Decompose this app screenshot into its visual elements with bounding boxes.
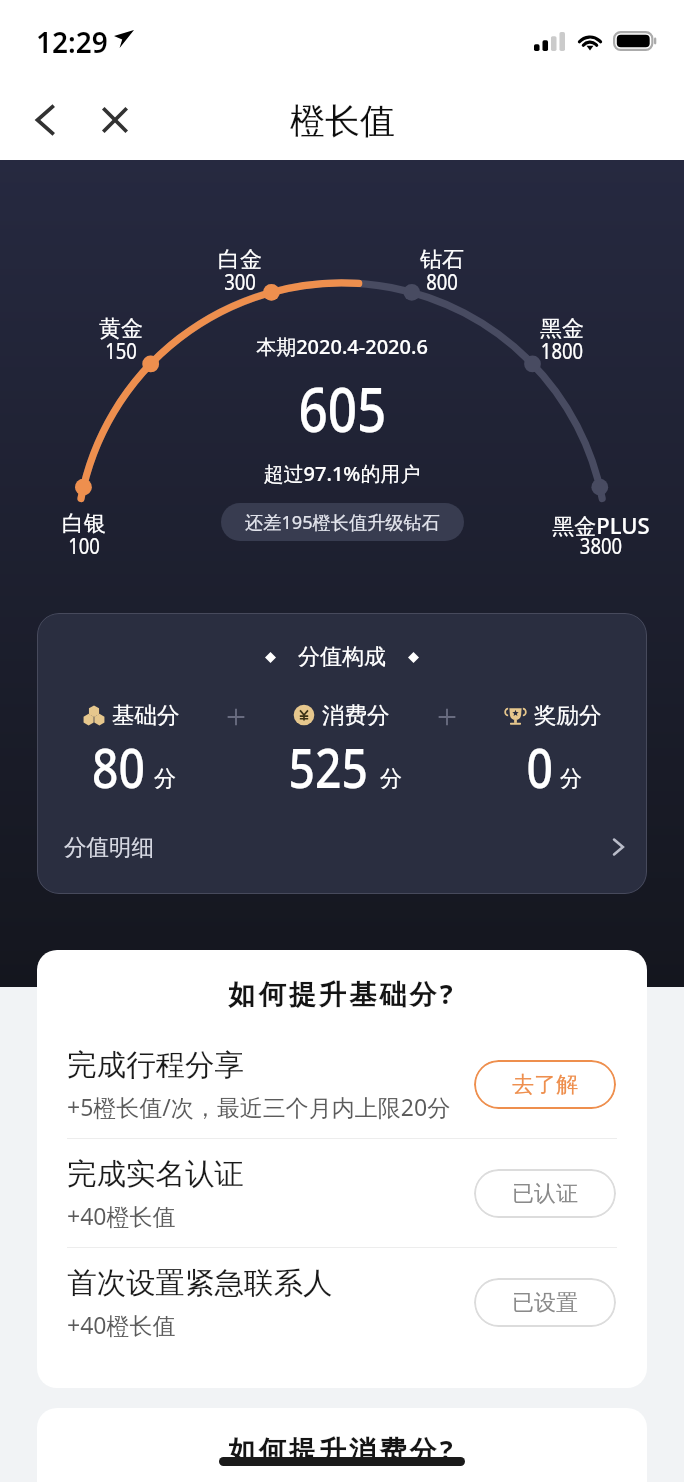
staticText: +40橙长值: [67, 1309, 176, 1340]
staticText: 如何提升基础分?: [37, 975, 647, 1012]
staticText: 300: [139, 266, 341, 296]
staticText: 分: [154, 765, 176, 793]
staticText: 基础分: [112, 701, 180, 729]
staticText: 白银: [0, 510, 204, 538]
button[interactable]: 还差195橙长值升级钻石: [221, 503, 464, 541]
staticText: 800: [341, 266, 543, 296]
staticText: 黑金: [442, 315, 682, 343]
staticText: 已认证: [512, 1180, 578, 1208]
staticText: 橙长值: [290, 99, 395, 143]
button[interactable]: Close: [92, 97, 138, 143]
staticText: 首次设置紧急联系人: [67, 1265, 333, 1302]
button[interactable]: 分值构成: [37, 613, 647, 894]
staticText: 100: [0, 530, 185, 560]
staticText: 完成实名认证: [67, 1156, 244, 1193]
staticText: 已设置: [512, 1289, 578, 1317]
staticText: 消费分: [322, 701, 390, 729]
staticText: 如何提升消费分?: [37, 1431, 647, 1468]
button[interactable]: 已认证: [474, 1169, 616, 1218]
staticText: 80: [92, 729, 145, 804]
button[interactable]: 首次设置紧急联系人: [37, 1248, 647, 1356]
staticText: 还差195橙长值升级钻石: [245, 510, 440, 535]
staticText: 白金: [120, 246, 360, 274]
staticText: 完成行程分享: [67, 1047, 244, 1084]
staticText: 分: [560, 765, 582, 793]
staticText: +40橙长值: [67, 1200, 176, 1231]
staticText: 超过97.1%的用户: [0, 460, 684, 487]
button[interactable]: 完成行程分享: [37, 1030, 647, 1138]
staticText: 黄金: [1, 315, 241, 343]
staticText: 分: [380, 765, 402, 793]
button[interactable]: 完成实名认证: [37, 1139, 647, 1247]
staticText: +5橙长值/次，最近三个月内上限20分: [67, 1091, 451, 1122]
staticText: 525: [289, 729, 368, 804]
staticText: 分值构成: [298, 643, 386, 671]
staticText: 605: [298, 367, 387, 450]
button[interactable]: 去了解: [474, 1060, 616, 1109]
staticText: 去了解: [512, 1071, 578, 1099]
staticText: 本期2020.4-2020.6: [0, 333, 684, 360]
staticText: 3800: [500, 530, 684, 560]
staticText: 黑金PLUS: [481, 510, 684, 540]
button[interactable]: 分值明细: [37, 814, 647, 880]
staticText: 奖励分: [534, 701, 602, 729]
button[interactable]: 已设置: [474, 1278, 616, 1327]
staticText: 0: [527, 729, 553, 804]
staticText: 钻石: [322, 246, 562, 274]
button[interactable]: Back: [22, 97, 68, 143]
staticText: 1800: [461, 335, 663, 365]
staticText: 150: [20, 335, 222, 365]
staticText: 分值明细: [64, 833, 154, 861]
staticText: 12:29: [36, 23, 108, 61]
